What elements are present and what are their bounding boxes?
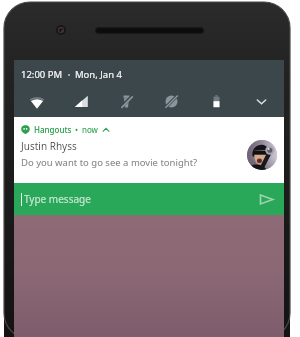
- staticText: Hangouts: [34, 124, 72, 135]
- button[interactable]: Justin Rhyss avatar: [247, 140, 277, 170]
- staticText: Mon, Jan 4: [75, 68, 122, 81]
- button[interactable]: Mobile signal: [59, 86, 104, 117]
- staticText: Type message: [24, 192, 91, 206]
- button[interactable]: Send: [257, 190, 275, 208]
- button[interactable]: Flashlight off: [104, 86, 149, 117]
- staticText: Do you want to go see a movie tonight?: [21, 156, 198, 169]
- button[interactable]: Expand quick settings: [239, 86, 284, 117]
- staticText: •: [75, 124, 79, 135]
- button[interactable]: Type message: [14, 183, 284, 215]
- button[interactable]: Collapse notification: [101, 125, 111, 135]
- staticText: 12:00 PM: [21, 68, 63, 81]
- button[interactable]: Wi-Fi: [14, 86, 59, 117]
- button[interactable]: Battery: [194, 86, 239, 117]
- staticText: Justin Rhyss: [21, 139, 77, 153]
- button[interactable]: Do not disturb off: [149, 86, 194, 117]
- staticText: now: [82, 124, 98, 135]
- button[interactable]: Hangouts: [14, 117, 284, 183]
